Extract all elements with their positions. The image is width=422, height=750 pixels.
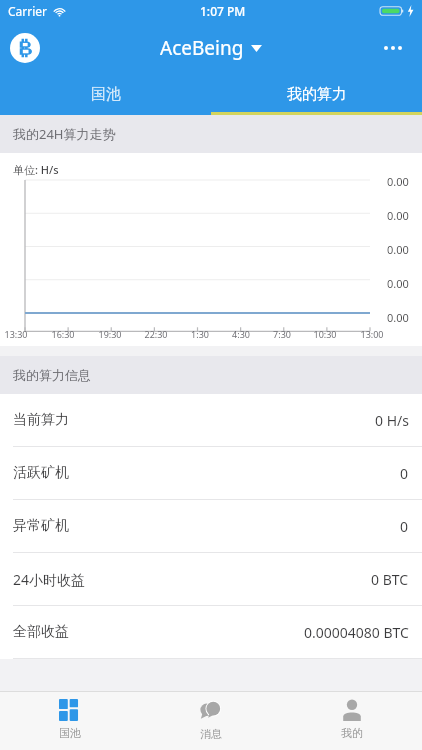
staticText: 国池 [59,726,81,740]
staticText: 我的算力信息 [13,367,91,383]
staticText: 0 H/s [375,411,409,430]
button[interactable]: 活跃矿机 [0,447,422,499]
staticText: 0 [400,464,409,483]
button[interactable]: 全部收益 [0,606,422,658]
button[interactable]: 我的算力 [211,74,422,115]
staticText: 0.00004080 BTC [304,623,409,642]
staticText: 10:30 [313,328,337,340]
staticText: 4:30 [232,328,250,340]
staticText: 0.00 [387,208,409,223]
button[interactable]: More options [376,31,410,65]
button[interactable]: 消息 [140,692,281,750]
staticText: 国池 [91,85,121,104]
staticText: 0 [400,517,409,536]
staticText: 0.00 [387,310,409,325]
staticText: 0.00 [387,242,409,257]
staticText: 13:00 [360,328,384,340]
staticText: 7:30 [273,328,291,340]
staticText: 当前算力 [13,411,69,429]
button[interactable]: 国池 [0,692,140,750]
staticText: 单位: H/s [13,162,59,177]
staticText: AceBeing [160,35,244,61]
button[interactable]: 国池 [0,74,211,115]
button[interactable]: 24小时收益 [0,553,422,605]
staticText: Carrier [8,3,48,19]
staticText: 我的24H算力走势 [13,125,116,143]
button[interactable]: 当前算力 [0,394,422,446]
staticText: 异常矿机 [13,517,69,535]
staticText: 我的 [341,726,363,740]
button[interactable]: Bitcoin [10,33,40,63]
button[interactable]: 异常矿机 [0,500,422,552]
staticText: 13:30 [4,328,28,340]
button[interactable]: 我的 [281,692,422,750]
staticText: 19:30 [98,328,122,340]
staticText: 全部收益 [13,623,69,641]
staticText: 0.00 [387,174,409,189]
staticText: 0.00 [387,276,409,291]
staticText: 0 BTC [371,570,409,589]
staticText: 22:30 [144,328,168,340]
staticText: 活跃矿机 [13,464,69,482]
staticText: 16:30 [51,328,75,340]
staticText: 1:07 PM [200,3,246,19]
staticText: 1:30 [191,328,209,340]
staticText: 24小时收益 [13,570,86,589]
staticText: 消息 [200,727,222,741]
staticText: 我的算力 [287,85,347,104]
button[interactable]: AceBeing [160,35,262,61]
